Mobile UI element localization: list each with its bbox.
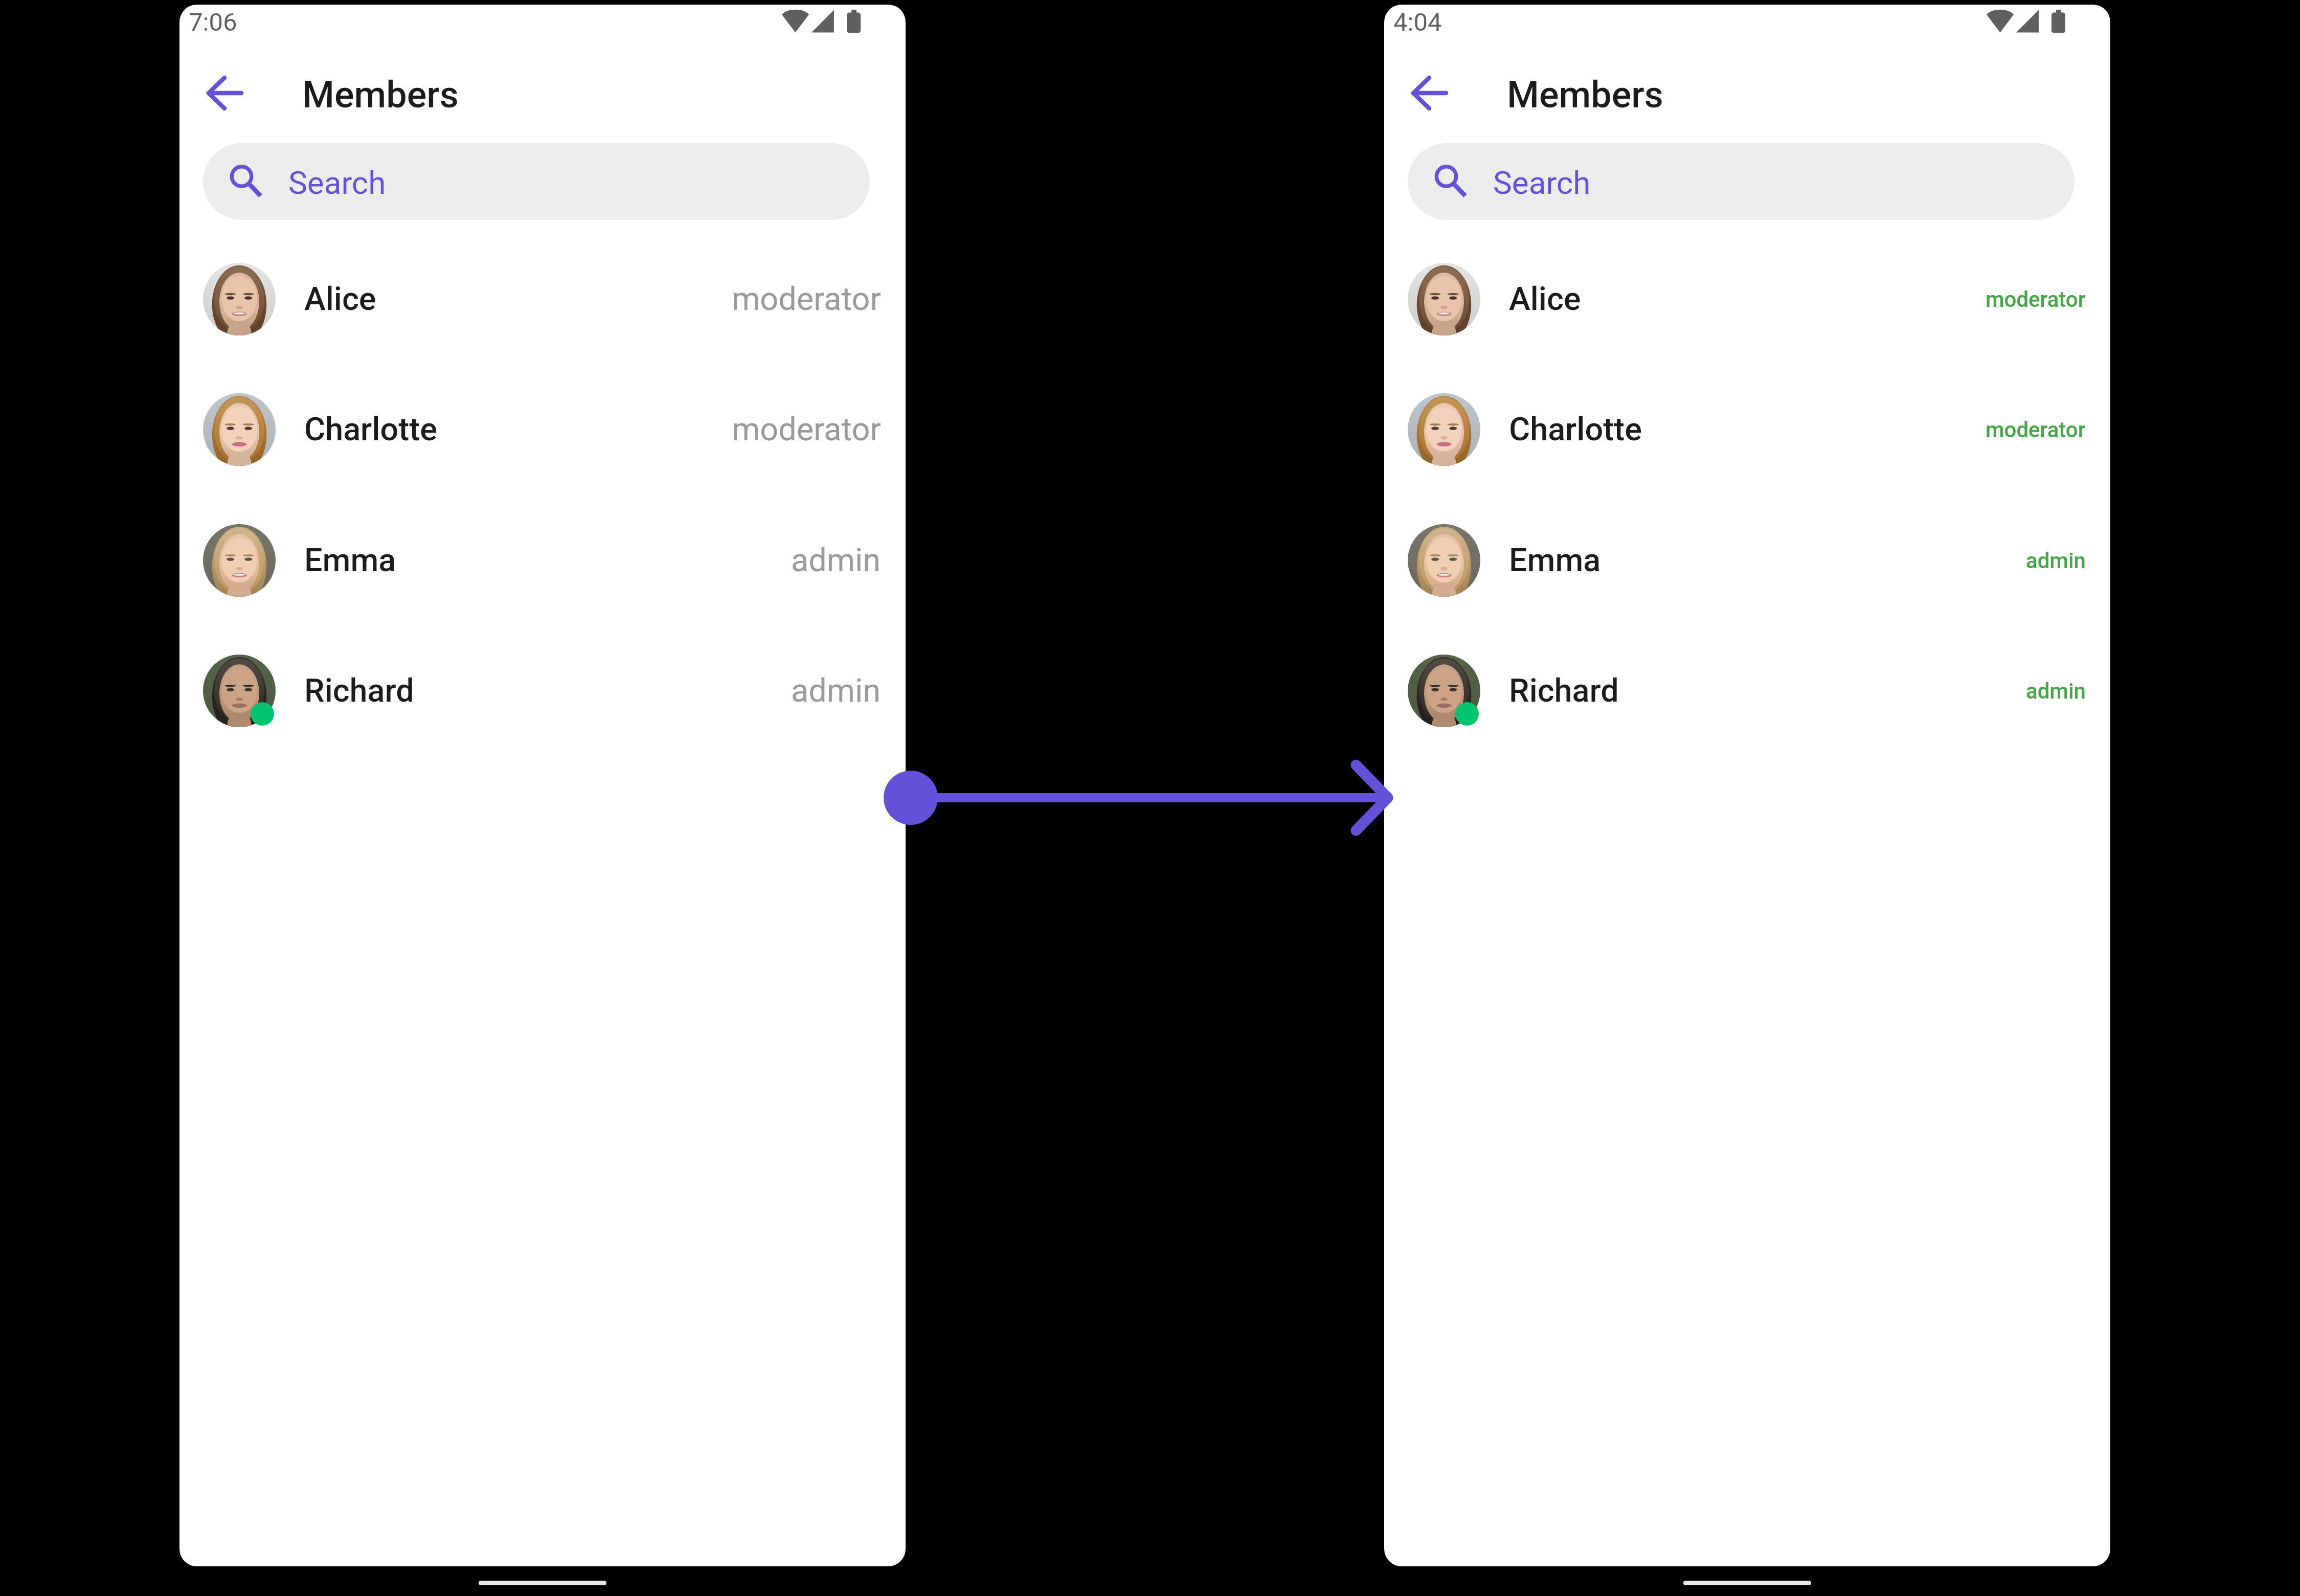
button[interactable]: Search: [203, 143, 870, 220]
staticText: admin: [791, 672, 881, 710]
staticText: Emma: [1509, 542, 1601, 579]
staticText: Members: [302, 73, 459, 116]
staticText: moderator: [1986, 287, 2086, 312]
staticText: Alice: [304, 280, 376, 318]
staticText: Charlotte: [1509, 411, 1642, 448]
staticText: Richard: [1509, 672, 1619, 710]
button[interactable]: Richard: [1384, 635, 2110, 747]
button[interactable]: Charlotte: [179, 373, 906, 486]
button[interactable]: Richard: [179, 635, 906, 747]
staticText: admin: [2026, 548, 2086, 573]
staticText: Charlotte: [304, 411, 437, 448]
staticText: admin: [2026, 679, 2086, 704]
button[interactable]: Charlotte: [1384, 373, 2110, 486]
staticText: 4:04: [1393, 8, 1442, 37]
button[interactable]: Alice: [179, 243, 906, 355]
button[interactable]: Emma: [1384, 504, 2110, 617]
button[interactable]: Emma: [179, 504, 906, 617]
staticText: Emma: [304, 542, 396, 579]
staticText: moderator: [1986, 417, 2086, 442]
staticText: Search: [288, 164, 386, 201]
button[interactable]: Search: [1408, 143, 2074, 220]
staticText: Richard: [304, 672, 414, 710]
staticText: moderator: [732, 411, 881, 448]
staticText: moderator: [732, 280, 881, 318]
staticText: Alice: [1509, 280, 1581, 318]
staticText: admin: [791, 542, 881, 579]
button[interactable]: Back: [191, 62, 263, 133]
button[interactable]: Alice: [1384, 243, 2110, 355]
staticText: Search: [1493, 164, 1591, 201]
button[interactable]: Back: [1396, 62, 1468, 133]
staticText: Members: [1507, 73, 1663, 116]
staticText: 7:06: [189, 8, 237, 37]
